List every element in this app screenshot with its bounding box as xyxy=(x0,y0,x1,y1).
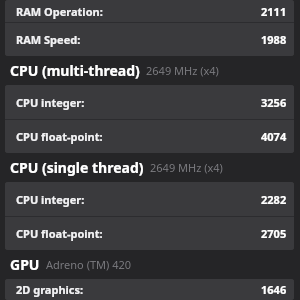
button[interactable]: RAM Operation: xyxy=(5,0,294,22)
staticText: 2705 xyxy=(261,226,287,241)
staticText: CPU integer: xyxy=(16,95,85,110)
staticText: 3256 xyxy=(261,95,287,110)
staticText: RAM Speed: xyxy=(16,32,81,47)
staticText: CPU integer: xyxy=(16,192,85,207)
button[interactable]: CPU float-point: xyxy=(5,217,294,250)
button[interactable]: CPU integer: xyxy=(5,85,294,119)
staticText: 2649 MHz (x4) xyxy=(146,63,219,78)
staticText: 1988 xyxy=(261,32,287,47)
button[interactable]: 2D graphics: xyxy=(5,279,294,300)
staticText: Adreno (TM) 420 xyxy=(46,257,132,272)
staticText: RAM Operation: xyxy=(16,4,103,19)
staticText: 2282 xyxy=(261,192,287,207)
staticText: CPU float-point: xyxy=(16,129,103,144)
staticText: CPU float-point: xyxy=(16,226,103,241)
button[interactable]: CPU integer: xyxy=(5,182,294,216)
staticText: 2D graphics: xyxy=(16,282,84,297)
staticText: CPU (multi-thread) xyxy=(10,61,140,80)
button[interactable]: CPU float-point: xyxy=(5,120,294,153)
staticText: 2111 xyxy=(261,4,287,19)
staticText: GPU xyxy=(10,255,40,274)
staticText: 4074 xyxy=(261,129,287,144)
staticText: 1646 xyxy=(261,282,287,297)
staticText: 2649 MHz (x4) xyxy=(150,160,223,175)
staticText: CPU (single thread) xyxy=(10,158,144,177)
button[interactable]: RAM Speed: xyxy=(5,23,294,56)
